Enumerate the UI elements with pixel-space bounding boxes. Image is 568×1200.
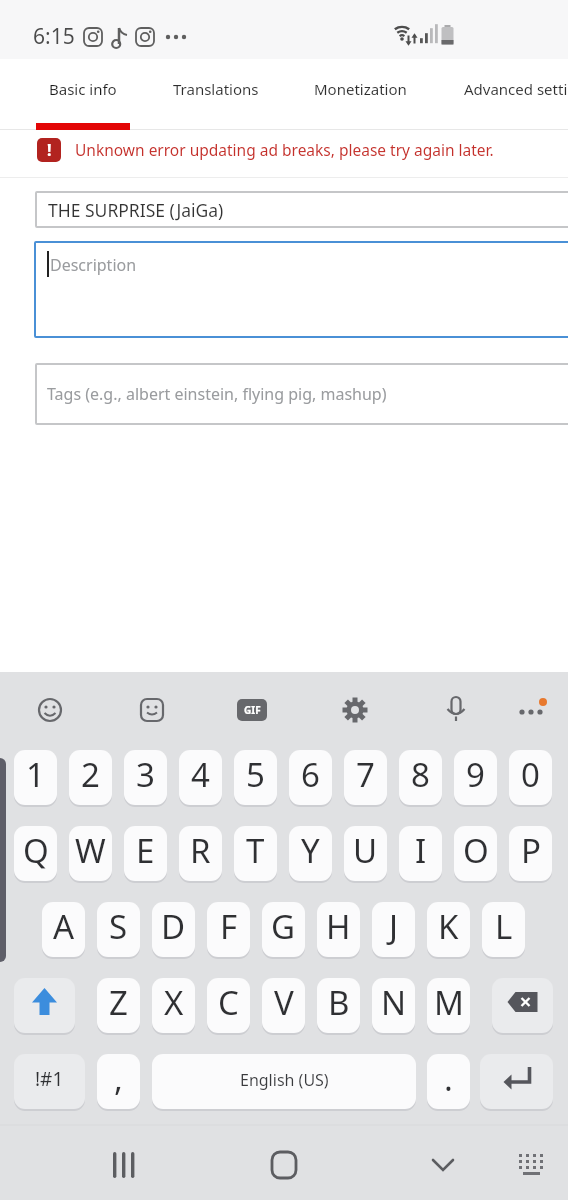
button[interactable]: 3 bbox=[124, 750, 167, 805]
button[interactable]: Monetization bbox=[308, 65, 412, 113]
button[interactable]: U bbox=[344, 826, 387, 881]
button[interactable]: R bbox=[179, 826, 222, 881]
staticText: G bbox=[271, 904, 296, 949]
button[interactable]: F bbox=[207, 902, 250, 957]
button[interactable] bbox=[30, 690, 70, 730]
staticText: 8 bbox=[411, 752, 430, 797]
staticText: , bbox=[114, 1056, 123, 1101]
button[interactable]: 2 bbox=[69, 750, 112, 805]
staticText: Advanced settings bbox=[464, 79, 568, 99]
button[interactable] bbox=[98, 1139, 150, 1191]
staticText: Tags (e.g., albert einstein, flying pig,… bbox=[47, 383, 387, 405]
staticText: F bbox=[220, 904, 238, 949]
button[interactable]: B bbox=[317, 978, 360, 1033]
staticText: ! bbox=[47, 139, 52, 161]
button[interactable] bbox=[14, 978, 75, 1033]
staticText: N bbox=[381, 980, 407, 1025]
button[interactable]: 4 bbox=[179, 750, 222, 805]
staticText: O bbox=[463, 828, 489, 873]
button[interactable]: 7 bbox=[344, 750, 387, 805]
button[interactable]: Translations bbox=[166, 65, 266, 113]
staticText: C bbox=[218, 980, 239, 1025]
staticText: 6 bbox=[301, 752, 320, 797]
staticText: . bbox=[444, 1056, 453, 1101]
button[interactable]: Basic info bbox=[36, 65, 130, 113]
button[interactable]: I bbox=[399, 826, 442, 881]
button[interactable] bbox=[132, 690, 172, 730]
button[interactable]: , bbox=[97, 1054, 140, 1109]
button[interactable]: E bbox=[124, 826, 167, 881]
button[interactable]: N bbox=[372, 978, 415, 1033]
button[interactable]: P bbox=[509, 826, 552, 881]
button[interactable]: Z bbox=[97, 978, 140, 1033]
button[interactable]: Y bbox=[289, 826, 332, 881]
staticText: 7 bbox=[356, 752, 375, 797]
button[interactable]: T bbox=[234, 826, 277, 881]
staticText: Z bbox=[109, 980, 128, 1025]
button[interactable]: . bbox=[427, 1054, 470, 1109]
button[interactable]: THE SURPRISE (JaiGa) bbox=[35, 191, 568, 228]
staticText: A bbox=[53, 904, 75, 949]
button[interactable]: 5 bbox=[234, 750, 277, 805]
button[interactable]: Q bbox=[14, 826, 57, 881]
button[interactable]: !#1 bbox=[14, 1054, 85, 1109]
staticText: 1 bbox=[26, 752, 45, 797]
button[interactable] bbox=[480, 1054, 553, 1109]
button[interactable]: J bbox=[372, 902, 415, 957]
button[interactable] bbox=[510, 690, 550, 730]
button[interactable]: L bbox=[482, 902, 525, 957]
button[interactable] bbox=[417, 1139, 469, 1191]
staticText: Monetization bbox=[314, 79, 407, 99]
staticText: Translations bbox=[173, 79, 259, 99]
button[interactable]: Description bbox=[34, 241, 568, 338]
button[interactable] bbox=[258, 1139, 310, 1191]
staticText: P bbox=[521, 828, 541, 873]
button[interactable] bbox=[505, 1139, 557, 1191]
button[interactable]: C bbox=[207, 978, 250, 1033]
button[interactable]: H bbox=[317, 902, 360, 957]
button[interactable]: M bbox=[427, 978, 470, 1033]
button[interactable]: D bbox=[152, 902, 195, 957]
staticText: 5 bbox=[246, 752, 265, 797]
staticText: W bbox=[75, 828, 106, 873]
button[interactable]: Tags (e.g., albert einstein, flying pig,… bbox=[35, 363, 568, 425]
button[interactable] bbox=[152, 1054, 416, 1109]
staticText: E bbox=[136, 828, 155, 873]
button[interactable]: Advanced settings bbox=[464, 65, 568, 113]
button[interactable]: GIF bbox=[237, 699, 267, 721]
button[interactable] bbox=[436, 690, 476, 730]
button[interactable]: 8 bbox=[399, 750, 442, 805]
staticText: X bbox=[164, 980, 184, 1025]
button[interactable]: 6 bbox=[289, 750, 332, 805]
staticText: I bbox=[415, 828, 427, 873]
button[interactable]: S bbox=[97, 902, 140, 957]
staticText: Q bbox=[23, 828, 49, 873]
button[interactable]: G bbox=[262, 902, 305, 957]
staticText: Unknown error updating ad breaks, please… bbox=[75, 139, 494, 160]
staticText: !#1 bbox=[35, 1066, 64, 1092]
staticText: 2 bbox=[81, 752, 100, 797]
button[interactable]: K bbox=[427, 902, 470, 957]
staticText: H bbox=[326, 904, 351, 949]
button[interactable]: V bbox=[262, 978, 305, 1033]
staticText: Y bbox=[301, 828, 320, 873]
button[interactable]: A bbox=[42, 902, 85, 957]
staticText: GIF bbox=[244, 703, 261, 717]
button[interactable] bbox=[492, 978, 553, 1033]
staticText: J bbox=[389, 904, 399, 949]
button[interactable]: 1 bbox=[14, 750, 57, 805]
staticText: D bbox=[161, 904, 186, 949]
staticText: Basic info bbox=[49, 79, 117, 99]
staticText: B bbox=[328, 980, 350, 1025]
staticText: R bbox=[190, 828, 211, 873]
staticText: K bbox=[438, 904, 459, 949]
button[interactable]: ! bbox=[0, 131, 568, 178]
button[interactable]: 0 bbox=[509, 750, 552, 805]
button[interactable]: O bbox=[454, 826, 497, 881]
button[interactable]: 9 bbox=[454, 750, 497, 805]
staticText: S bbox=[109, 904, 128, 949]
button[interactable]: W bbox=[69, 826, 112, 881]
staticText: V bbox=[274, 980, 294, 1025]
button[interactable] bbox=[335, 690, 375, 730]
button[interactable]: X bbox=[152, 978, 195, 1033]
